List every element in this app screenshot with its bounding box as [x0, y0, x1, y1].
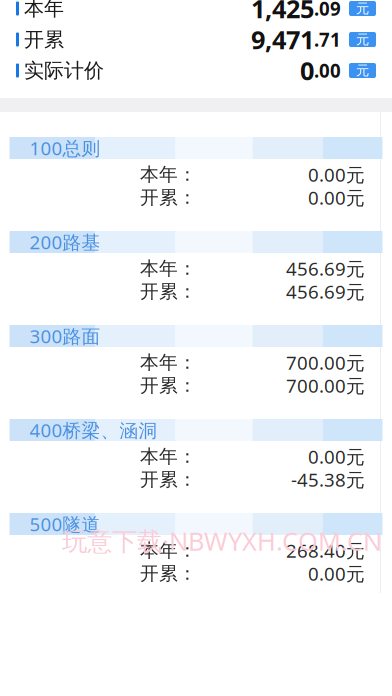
staticText: 500隧道 — [29, 512, 100, 536]
staticText: 开累： — [140, 186, 197, 209]
staticText: 本年： — [140, 163, 197, 186]
staticText: 700.00元 — [286, 373, 365, 398]
staticText: 400桥梁、涵洞 — [29, 418, 157, 442]
staticText: 玩意下载·NBWYXH.COM.CN — [62, 524, 382, 558]
staticText: 本年 — [24, 0, 64, 21]
staticText: 0.00元 — [308, 444, 365, 469]
staticText: 9,471 — [251, 23, 314, 56]
staticText: 456.69元 — [286, 279, 365, 304]
staticText: 开累 — [24, 27, 64, 52]
staticText: 200路基 — [29, 230, 100, 254]
button[interactable]: 500隧道 — [0, 513, 392, 585]
button[interactable]: 200路基 — [0, 231, 392, 303]
staticText: 开累： — [140, 280, 197, 303]
staticText: 0.00元 — [308, 162, 365, 187]
staticText: 268.40元 — [286, 538, 365, 563]
button[interactable]: 400桥梁、涵洞 — [0, 419, 392, 491]
staticText: -45.38元 — [291, 467, 365, 492]
staticText: 456.69元 — [286, 256, 365, 281]
staticText: 开累： — [140, 562, 197, 585]
staticText: 开累： — [140, 374, 197, 397]
staticText: 元 — [356, 0, 369, 17]
staticText: .09 — [314, 0, 341, 21]
staticText: 700.00元 — [286, 350, 365, 375]
staticText: 0.00元 — [308, 185, 365, 210]
staticText: 100总则 — [29, 136, 100, 160]
staticText: 300路面 — [29, 324, 100, 348]
staticText: 0.00元 — [308, 561, 365, 586]
staticText: .71 — [314, 27, 341, 52]
staticText: 0 — [300, 54, 314, 87]
staticText: 开累： — [140, 468, 197, 491]
staticText: 元 — [356, 62, 369, 79]
staticText: 本年： — [140, 351, 197, 374]
staticText: 实际计价 — [24, 58, 104, 83]
staticText: 本年： — [140, 257, 197, 280]
staticText: 1,425 — [251, 0, 314, 25]
button[interactable]: 100总则 — [0, 137, 392, 209]
staticText: 本年： — [140, 445, 197, 468]
staticText: .00 — [314, 58, 341, 83]
button[interactable]: 300路面 — [0, 325, 392, 397]
staticText: 本年： — [140, 539, 197, 562]
staticText: 元 — [356, 31, 369, 48]
